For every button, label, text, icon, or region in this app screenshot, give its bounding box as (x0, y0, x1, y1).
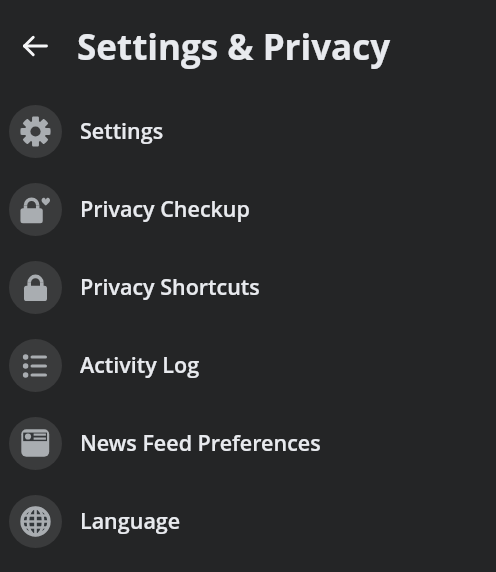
staticText: Privacy Shortcuts (80, 272, 260, 301)
staticText: Language (80, 506, 181, 535)
button[interactable]: Language (0, 482, 496, 560)
staticText: Activity Log (80, 350, 200, 379)
staticText: News Feed Preferences (80, 428, 321, 457)
button[interactable]: News Feed Preferences (0, 404, 496, 482)
button[interactable]: Privacy Checkup (0, 170, 496, 248)
staticText: Settings & Privacy (77, 23, 391, 71)
button[interactable]: Privacy Shortcuts (0, 248, 496, 326)
button[interactable]: Settings (0, 92, 496, 170)
button[interactable]: Back (9, 20, 61, 72)
staticText: Privacy Checkup (80, 194, 250, 223)
button[interactable]: Activity Log (0, 326, 496, 404)
staticText: Settings (80, 116, 164, 145)
